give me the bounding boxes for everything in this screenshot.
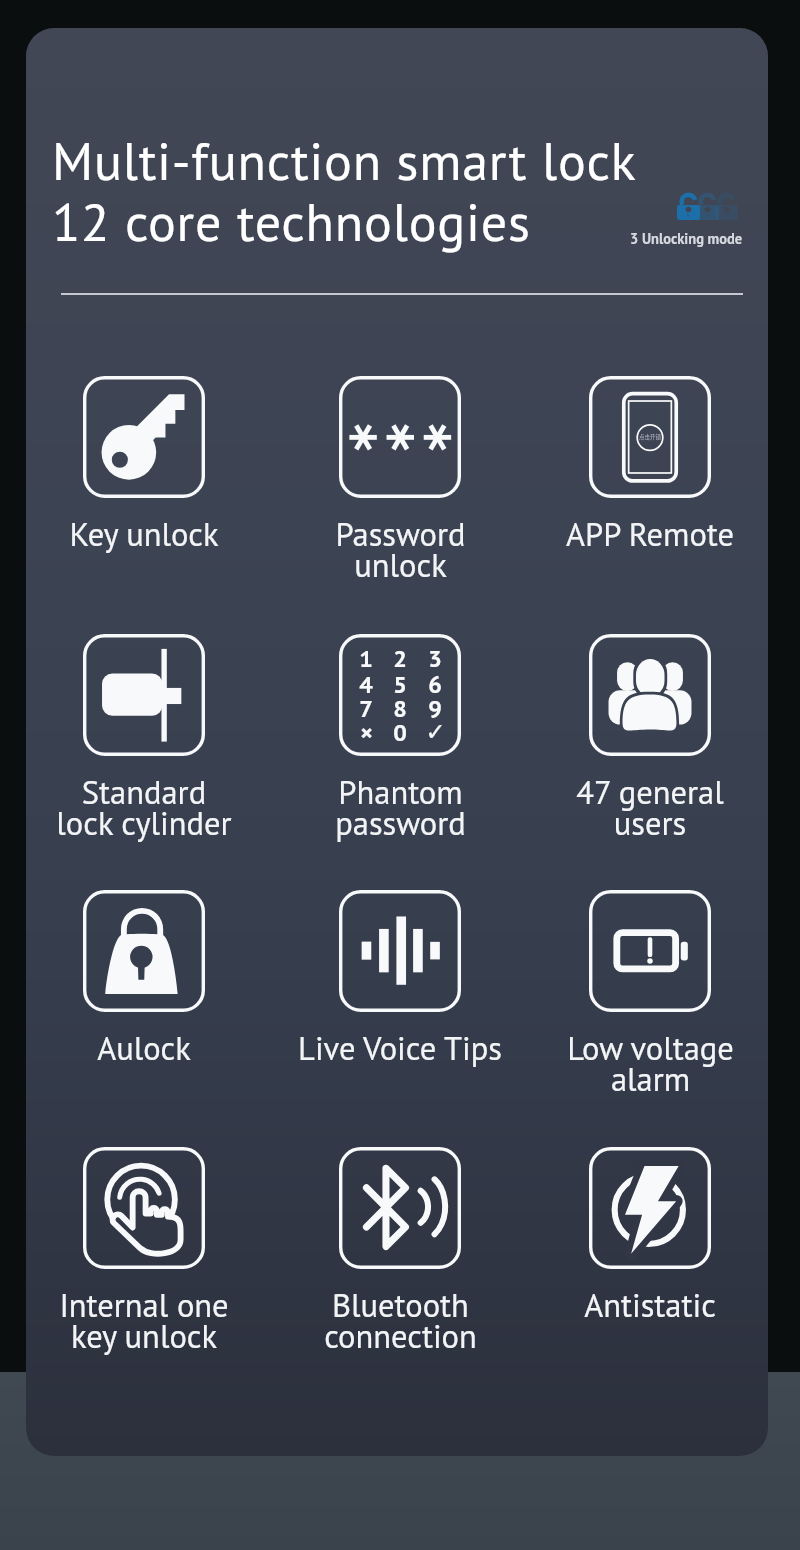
staticText: ✓ — [425, 718, 446, 746]
staticText: 8 — [393, 693, 407, 723]
staticText: 2 — [393, 643, 407, 673]
staticText: 3 — [428, 643, 442, 673]
button[interactable]: Key unlock — [29, 376, 259, 555]
button[interactable]: Low voltage alarm — [535, 890, 765, 1100]
button[interactable]: 1 — [285, 634, 515, 844]
staticText: Antistatic — [584, 1284, 716, 1326]
staticText: 点击开锁 — [639, 433, 661, 441]
button[interactable]: Live Voice Tips — [285, 890, 515, 1069]
button[interactable]: Internal one key unlock — [29, 1147, 259, 1357]
button[interactable]: 47 general users — [535, 634, 765, 844]
staticText: Password unlock — [335, 513, 466, 586]
staticText: 3 Unlocking mode — [630, 229, 743, 248]
button[interactable]: Aulock — [29, 890, 259, 1069]
staticText: Standard lock cylinder — [56, 771, 232, 844]
button[interactable]: Antistatic — [535, 1147, 765, 1326]
staticText: APP Remote — [566, 513, 734, 555]
staticText: 4 — [359, 669, 373, 699]
staticText: × — [360, 717, 373, 747]
button[interactable]: Bluetooth connection — [285, 1147, 515, 1357]
staticText: Aulock — [97, 1027, 191, 1069]
staticText: 1 — [359, 643, 373, 673]
staticText: Internal one key unlock — [59, 1284, 229, 1357]
staticText: 5 — [393, 669, 407, 699]
staticText: 47 general users — [576, 771, 724, 844]
staticText: Key unlock — [69, 513, 219, 555]
other: 3 Unlocking mode — [616, 229, 757, 248]
staticText: 0 — [393, 717, 407, 747]
staticText: Bluetooth connection — [324, 1284, 477, 1357]
staticText: 9 — [428, 693, 442, 723]
staticText: Multi-function smart lock 12 core techno… — [52, 127, 637, 255]
staticText: 7 — [359, 693, 373, 723]
button[interactable]: Standard lock cylinder — [29, 634, 259, 844]
button[interactable]: 点击开锁 — [535, 376, 765, 555]
staticText: Low voltage alarm — [567, 1027, 734, 1100]
button[interactable]: Password unlock — [285, 376, 515, 586]
staticText: 6 — [428, 669, 442, 699]
staticText: Phantom password — [335, 771, 466, 844]
staticText: Live Voice Tips — [298, 1027, 502, 1069]
